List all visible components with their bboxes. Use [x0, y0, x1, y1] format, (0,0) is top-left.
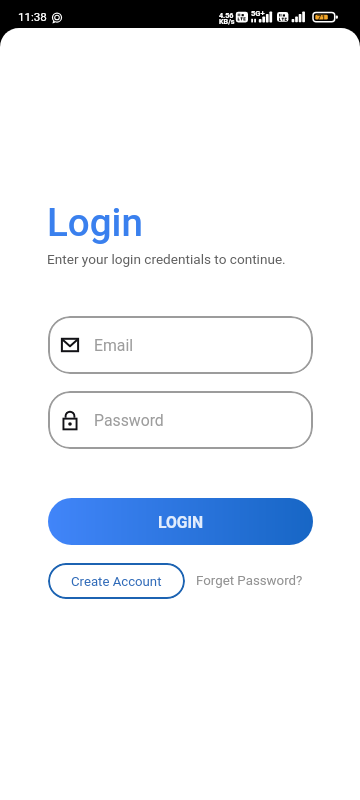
staticText: 71	[317, 13, 326, 22]
other: Email	[60, 335, 80, 355]
button[interactable]: Forget Password?	[185, 563, 313, 599]
staticText: LOGIN	[158, 513, 204, 531]
other: Password	[60, 410, 80, 430]
button[interactable]: Email	[48, 316, 313, 374]
staticText: 4.56	[219, 11, 234, 19]
button[interactable]: LOGIN	[48, 498, 313, 545]
staticText: Enter your login credentials to continue…	[47, 251, 286, 267]
staticText: 5G+	[251, 9, 265, 18]
staticText: Email	[94, 336, 134, 355]
staticText: Forget Password?	[196, 573, 303, 589]
staticText: KB/s	[219, 17, 235, 25]
button[interactable]: Password	[48, 391, 313, 449]
button[interactable]: Create Account	[48, 563, 185, 599]
staticText: Create Account	[71, 574, 162, 589]
staticText: Login	[47, 200, 143, 245]
staticText: Password	[94, 411, 164, 430]
staticText: 11:38	[18, 10, 47, 24]
